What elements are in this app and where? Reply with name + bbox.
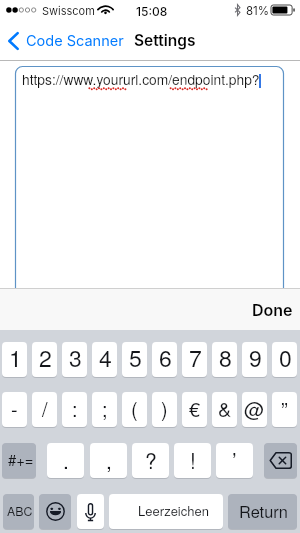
staticText: ABC [7,502,33,520]
staticText: ( [131,394,138,423]
staticText: 2 [39,342,52,374]
staticText: 9 [249,342,262,374]
button[interactable]: ( [122,392,147,427]
staticText: 4 [99,342,112,374]
staticText: 0 [279,342,292,374]
staticText: Settings [134,31,196,50]
button[interactable]: € [182,392,207,427]
staticText: , [106,445,112,475]
button[interactable]: - [2,392,27,427]
button[interactable]: 4 [92,342,117,377]
staticText: Return [239,499,288,522]
staticText: ? [145,445,157,475]
button[interactable]: ! [174,443,211,478]
button[interactable]: ” [272,392,297,427]
button[interactable]: Return [228,494,297,529]
staticText: ) [161,394,168,423]
button[interactable]: ’ [216,443,253,478]
button[interactable]: 3 [62,342,87,377]
button[interactable]: ? [132,443,169,478]
staticText: 3 [69,342,82,374]
button[interactable]: 6 [152,342,177,377]
staticText: https://www.yoururl.com/endpoint.php? [22,69,260,89]
staticText: ” [281,394,288,423]
staticText: 8 [219,342,232,374]
button[interactable]: Emoji keyboard [39,494,71,529]
button[interactable]: ABC [3,494,34,529]
staticText: Done [252,300,293,319]
staticText: @ [244,394,265,423]
staticText: Code Scanner [26,32,124,50]
button[interactable]: Dictate [77,494,104,529]
button[interactable]: 1 [2,342,27,377]
staticText: ’ [232,445,237,475]
staticText: - [11,394,18,423]
button[interactable]: #+= [2,443,36,478]
staticText: 6 [159,342,172,374]
button[interactable]: : [62,392,87,427]
staticText: 5 [129,342,142,374]
button[interactable]: @ [242,392,267,427]
staticText: . [63,445,69,475]
staticText: #+= [8,449,34,470]
button[interactable]: 8 [212,342,237,377]
button[interactable]: , [90,443,127,478]
staticText: & [218,394,232,423]
staticText: 81% [246,4,270,18]
button[interactable]: . [47,443,84,478]
button[interactable]: 9 [242,342,267,377]
button[interactable]: 5 [122,342,147,377]
button[interactable]: 7 [182,342,207,377]
staticText: € [189,394,201,423]
button[interactable]: Code Scanner [4,20,128,61]
button[interactable]: https://www.yoururl.com/endpoint.php? [15,66,284,291]
staticText: ! [190,445,196,475]
button[interactable]: Backspace [264,443,297,478]
button[interactable]: / [32,392,57,427]
button[interactable]: Leerzeichen [109,494,223,529]
button[interactable]: & [212,392,237,427]
staticText: 15:08 [136,4,168,19]
staticText: 7 [189,342,202,374]
button[interactable]: 2 [32,342,57,377]
staticText: ; [102,394,108,423]
staticText: : [72,394,78,423]
button[interactable]: ) [152,392,177,427]
staticText: Leerzeichen [138,501,209,520]
button[interactable]: ; [92,392,117,427]
staticText: / [42,394,48,423]
button[interactable]: Done [238,294,300,325]
staticText: Swisscom [42,4,95,17]
button[interactable]: 0 [272,342,297,377]
staticText: 1 [9,342,22,374]
